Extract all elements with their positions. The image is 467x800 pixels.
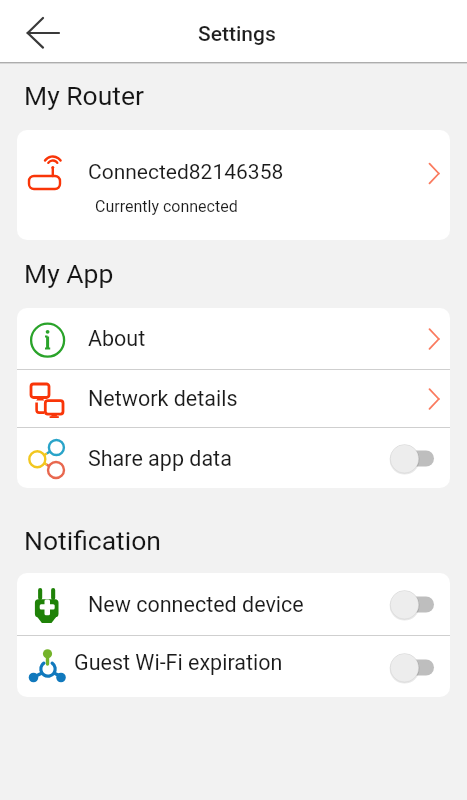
staticText: Notification (24, 525, 161, 556)
button[interactable]: Network details (17, 370, 450, 427)
button[interactable] (15, 13, 63, 53)
button[interactable]: New connected device (17, 573, 450, 635)
button[interactable]: About (17, 308, 450, 369)
staticText: Currently connected (95, 197, 238, 216)
staticText: Connected82146358 (88, 160, 284, 185)
staticText: New connected device (88, 592, 304, 617)
staticText: My Router (24, 80, 145, 111)
staticText: My App (24, 258, 114, 289)
button[interactable]: Share app data (17, 428, 450, 488)
button[interactable]: Guest Wi-Fi expiration (17, 636, 450, 697)
staticText: About (88, 326, 146, 351)
staticText: Network details (88, 386, 238, 411)
staticText: Share app data (88, 446, 232, 471)
button[interactable]: Connected82146358 (17, 130, 450, 240)
staticText: Settings (198, 22, 276, 47)
staticText: Guest Wi-Fi expiration (74, 650, 283, 675)
